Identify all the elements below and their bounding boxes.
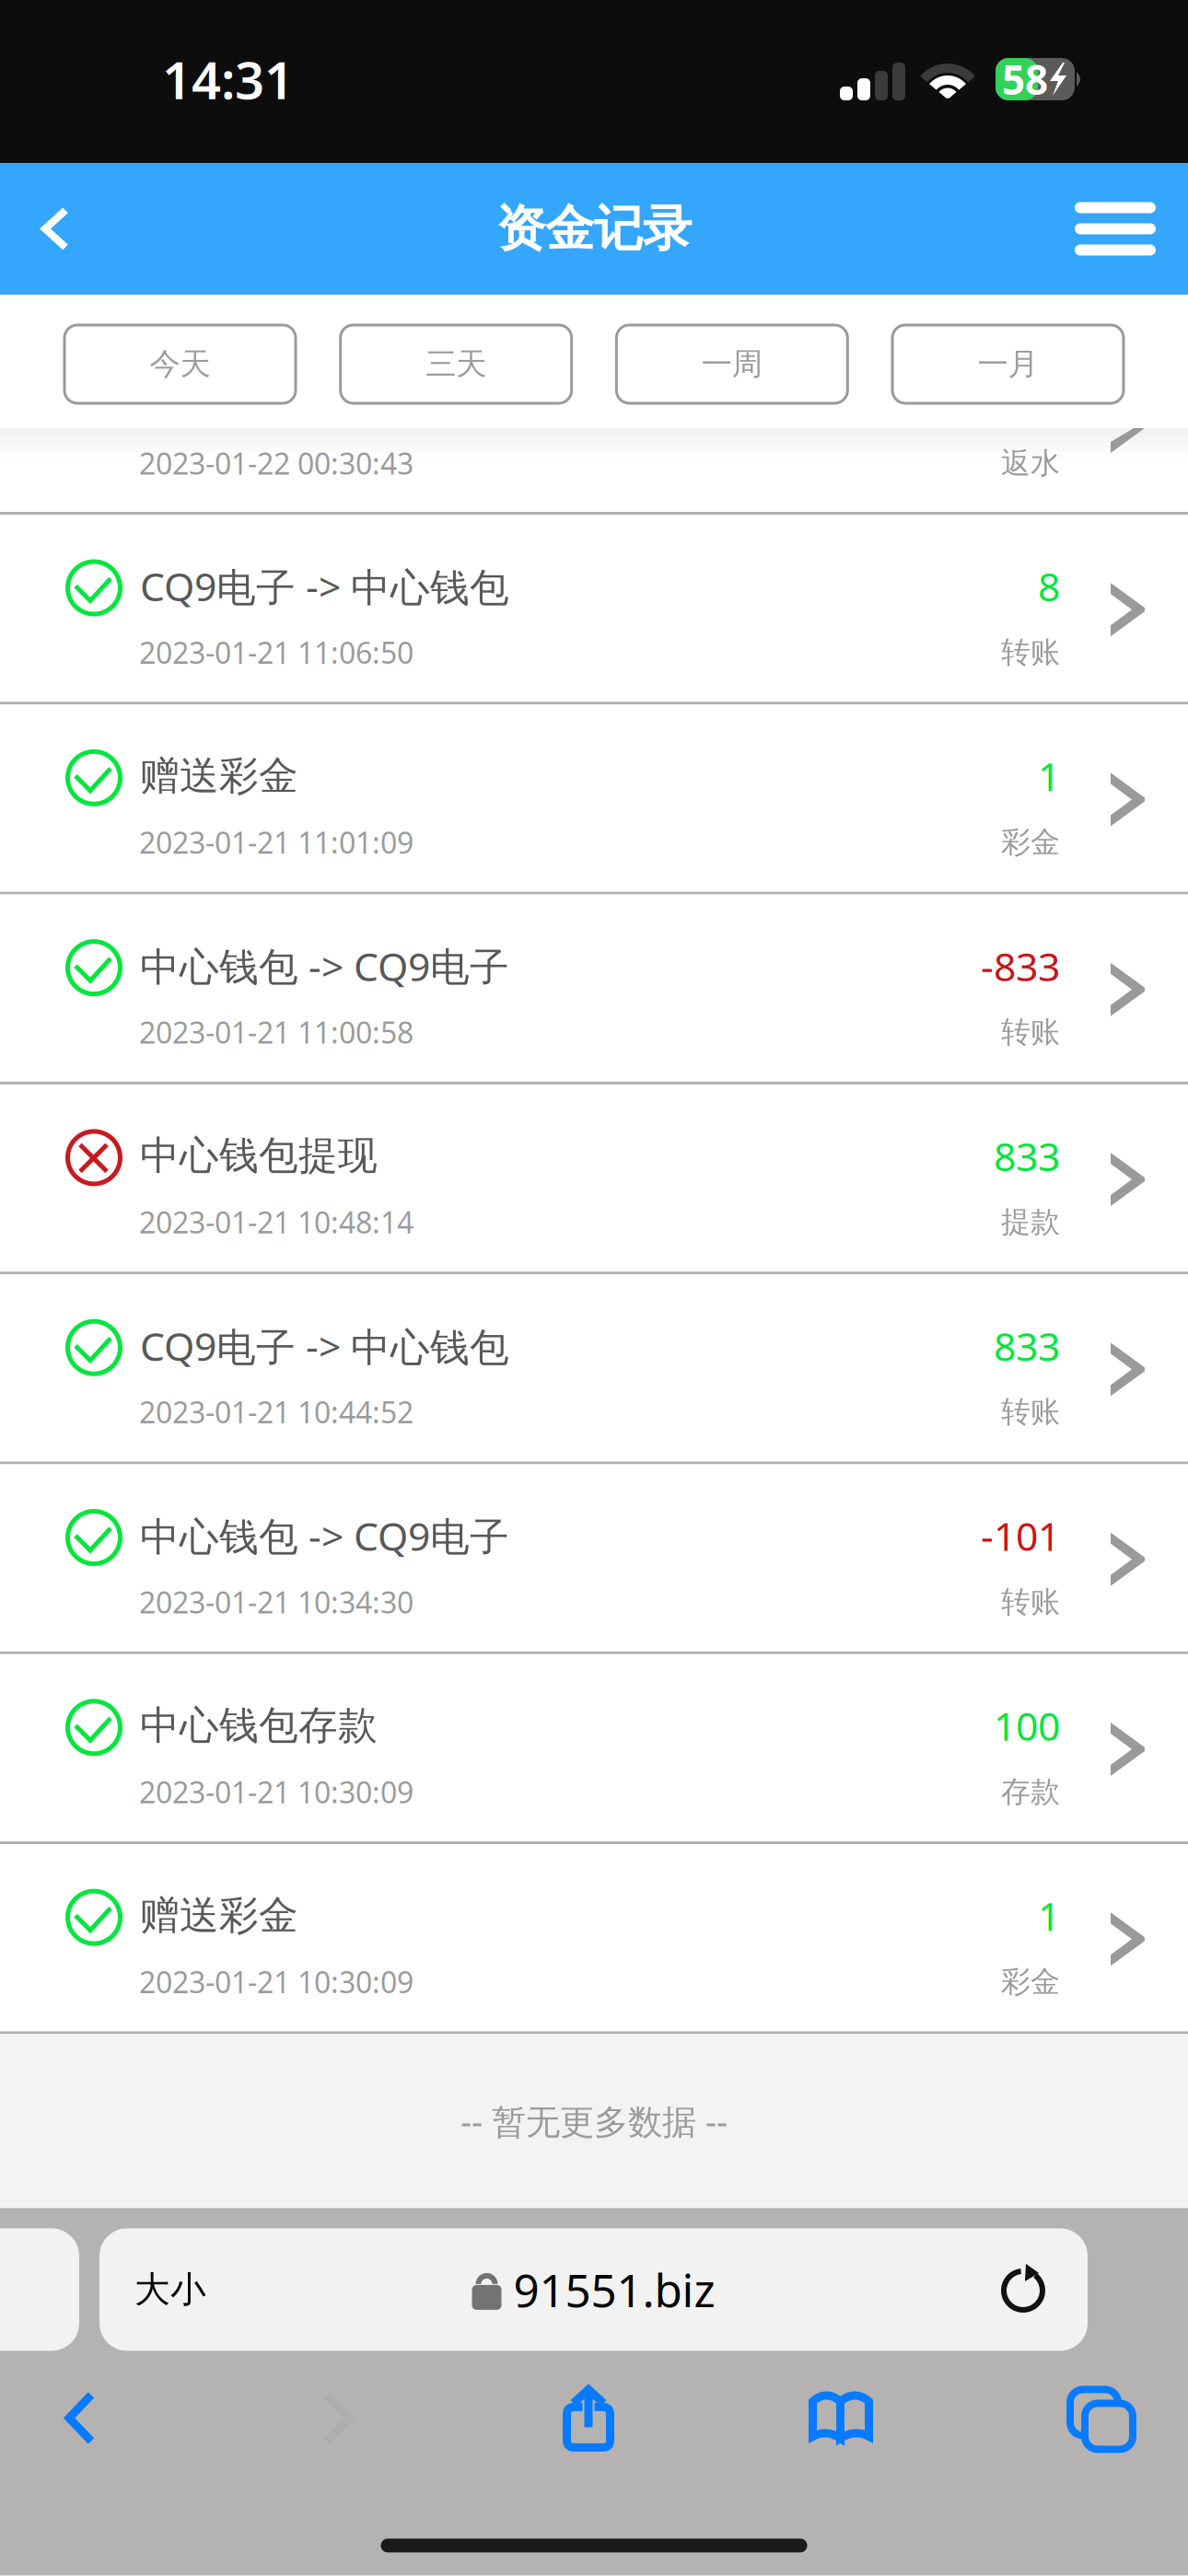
staticText: 1 [1038,1889,1060,1942]
staticText: CQ9电子 -> 中心钱包 [140,560,509,612]
staticText: 833 [994,1320,1060,1372]
staticText: 今天 [150,345,210,383]
staticText: CQ9电子 -> 中心钱包 [140,1320,509,1372]
button[interactable]: 地址栏 [0,2228,1188,2351]
staticText: 一月 [978,345,1038,383]
staticText: 8 [1038,560,1060,612]
staticText: 2023-01-21 10:48:14 [139,1203,413,1242]
staticText: 返水 [1001,445,1060,481]
button[interactable]: 中心钱包 -> CQ9电子 [0,895,1188,1084]
button[interactable]: 三天 [340,325,572,403]
button[interactable]: 赠送彩金 [0,705,1188,895]
staticText: 中心钱包提现 [140,1132,378,1180]
button[interactable]: 赠送彩金 [0,1844,1188,2034]
button[interactable]: 中心钱包存款 [0,1654,1188,1844]
staticText: -101 [981,1510,1060,1562]
staticText: 100 [994,1700,1060,1752]
button[interactable]: 中心钱包提现 [0,1084,1188,1274]
staticText: 2023-01-21 10:34:30 [139,1582,413,1622]
button[interactable]: 一月 [892,325,1124,403]
staticText: 存款 [1001,1774,1060,1810]
staticText: 中心钱包存款 [140,1701,378,1750]
staticText: 三天 [426,345,486,383]
staticText: 一周 [702,345,762,383]
button[interactable]: 一周 [616,325,848,403]
staticText: 赠送彩金 [140,1891,298,1940]
button[interactable]: CQ9电子 -> 中心钱包 [0,515,1188,705]
staticText: 2023-01-21 10:44:52 [139,1392,413,1432]
staticText: 833 [994,1130,1060,1182]
staticText: 91551.biz [513,2259,715,2320]
button[interactable]: 今天 [64,325,296,403]
staticText: 中心钱包 -> CQ9电子 [140,940,509,992]
staticText: 2023-01-21 10:30:09 [139,1962,413,2001]
button[interactable]: 返回 [0,163,101,294]
button[interactable]: 书签 [661,2371,1020,2465]
staticText: 提款 [1001,1204,1060,1240]
staticText: 2023-01-21 10:30:09 [139,1772,413,1811]
staticText: 1 [1038,750,1060,802]
staticText: 大小 [134,2268,206,2311]
button[interactable]: CQ9电子 -> 中心钱包 [0,1274,1188,1464]
button[interactable]: 菜单 [1038,164,1188,293]
staticText: 58 [1002,52,1048,106]
button[interactable]: 分享 [516,2371,661,2465]
staticText: 赠送彩金 [140,752,298,800]
staticText: -833 [981,940,1060,992]
staticText: 14:31 [162,45,294,113]
staticText: 2023-01-22 00:30:43 [139,444,413,483]
staticText: 2023-01-21 11:01:09 [139,823,413,862]
staticText: 转账 [1001,1014,1060,1050]
staticText: 2023-01-21 11:00:58 [139,1013,413,1052]
staticText: 转账 [1001,1394,1060,1430]
staticText: 资金记录 [496,199,692,259]
staticText: 彩金 [1001,824,1060,860]
staticText: 转账 [1001,1584,1060,1620]
button[interactable]: 标签页 [1020,2371,1188,2465]
staticText: 2023-01-21 11:06:50 [139,633,413,672]
staticText: 彩金 [1001,1964,1060,2000]
staticText: -- 暂无更多数据 -- [460,2098,728,2144]
staticText: 中心钱包 -> CQ9电子 [140,1510,509,1562]
staticText: 转账 [1001,634,1060,670]
button[interactable]: 后退 [0,2371,160,2465]
button[interactable]: 中心钱包 -> CQ9电子 [0,1464,1188,1654]
